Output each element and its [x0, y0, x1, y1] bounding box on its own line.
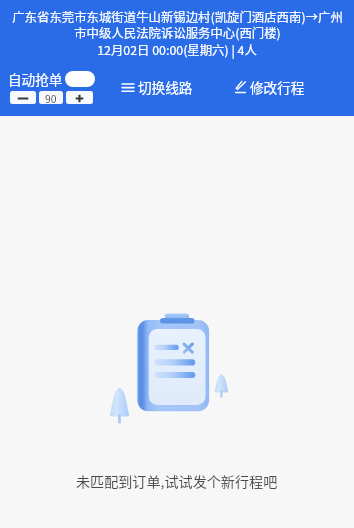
button[interactable]: 修改行程 [235, 77, 305, 97]
staticText: 切换线路 [138, 77, 193, 97]
staticText: 自动抢单 [8, 69, 63, 89]
button[interactable]: 自动抢单开关 [65, 71, 95, 87]
button[interactable]: 调整 [66, 91, 93, 104]
button[interactable]: 调整 [10, 91, 36, 104]
staticText: 修改行程 [250, 77, 305, 97]
button[interactable]: 切换线路 [122, 77, 193, 97]
staticText: 广东省东莞市东城街道牛山新锡边村(凯旋门酒店西南)→广州 [12, 8, 343, 26]
button[interactable]: 90 [39, 91, 63, 104]
button[interactable]: 未匹配到订单,试试发个新行程吧 [76, 471, 278, 491]
staticText: 12月02日 00:00(星期六) | 4人 [97, 41, 257, 59]
staticText: 市中级人民法院诉讼服务中心(西门楼) [74, 24, 281, 42]
staticText: 90 [45, 91, 57, 104]
